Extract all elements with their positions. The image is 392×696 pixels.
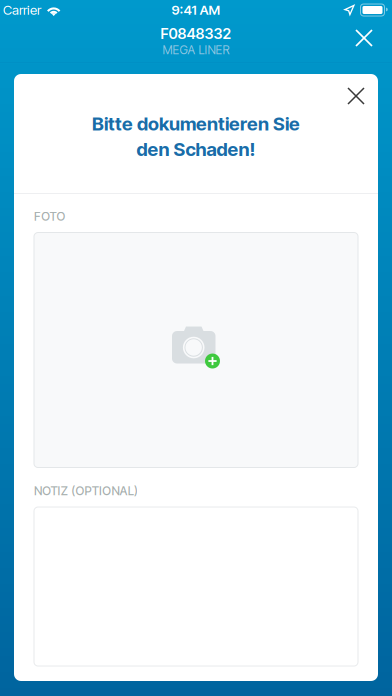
staticText: Carrier [3,2,41,18]
button[interactable]: Add photo [34,232,358,467]
staticText: 9:41 AM [171,2,220,18]
staticText: F0848332 [160,25,231,43]
staticText: MEGA LINER [162,43,229,57]
staticText: Bitte dokumentieren Sie [92,112,300,135]
button[interactable]: Dismiss [338,79,374,113]
button[interactable]: Close [342,21,386,61]
staticText: NOTIZ (OPTIONAL) [34,483,138,498]
staticText: den Schaden! [136,138,255,161]
staticText: FOTO [34,209,66,223]
